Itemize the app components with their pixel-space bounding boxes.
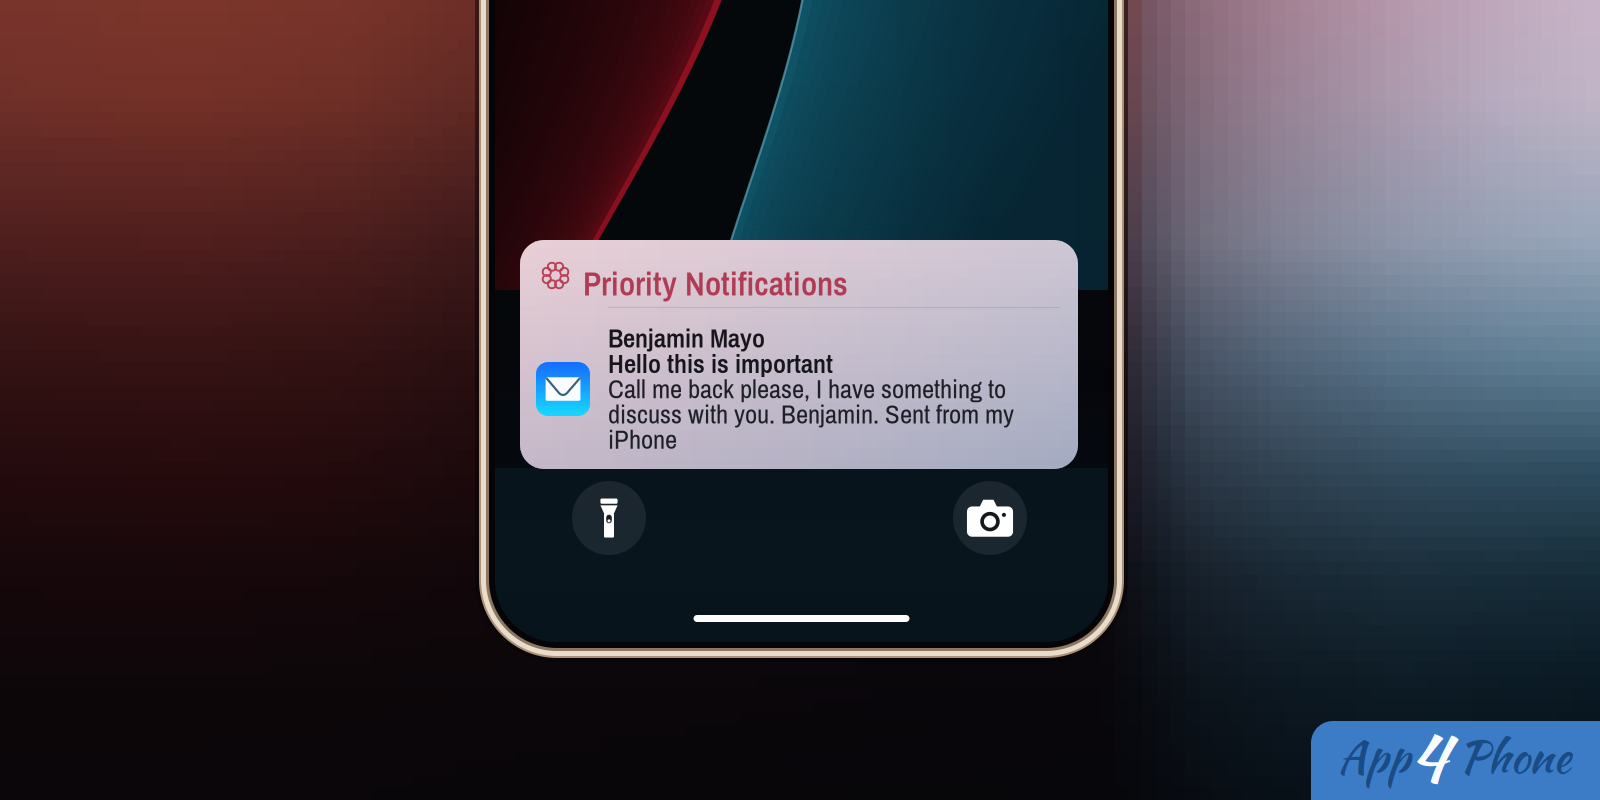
staticText: Call me back please, I have something to xyxy=(608,371,1006,406)
staticText: Priority Notifications xyxy=(583,261,848,306)
button[interactable]: Flashlight xyxy=(572,481,646,555)
staticText: Benjamin Mayo xyxy=(608,320,765,356)
button[interactable]: App 4 Phone xyxy=(1311,721,1600,800)
button[interactable]: Camera xyxy=(953,481,1027,555)
staticText: Hello this is important xyxy=(608,345,833,381)
staticText: App xyxy=(1338,725,1410,789)
staticText: iPhone xyxy=(608,421,677,457)
staticText: Phone xyxy=(1459,725,1571,789)
staticText: 4 xyxy=(1410,710,1448,800)
staticText: discuss with you. Benjamin. Sent from my xyxy=(608,396,1014,432)
